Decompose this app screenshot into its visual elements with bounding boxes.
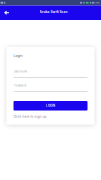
staticText: Login [13, 54, 22, 58]
button[interactable]: LOGIN [13, 101, 87, 110]
staticText: Password [13, 84, 26, 87]
button[interactable]: Click here to sign up [13, 115, 46, 118]
staticText: Username [13, 70, 27, 73]
staticText: Scuba Swift Scan [39, 10, 67, 14]
staticText: Click here to sign up [13, 115, 46, 118]
staticText: LOGIN [46, 104, 55, 107]
button[interactable]: Back [0, 5, 13, 20]
